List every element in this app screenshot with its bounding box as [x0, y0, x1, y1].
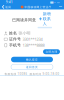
- staticText: 138****8888: [22, 43, 44, 48]
- staticText: 手机号: [9, 43, 21, 48]
- staticText: 立即办理: [45, 50, 57, 53]
- staticText: 返回: [5, 5, 11, 9]
- staticText: ▮▮▮ ⌁ ▭: [50, 1, 60, 4]
- staticText: 返回首页: [26, 65, 38, 69]
- staticText: 张小明: [18, 31, 30, 36]
- staticText: 确认提交: [26, 58, 38, 61]
- staticText: 证件号: [9, 37, 21, 42]
- button[interactable]: 确认提交: [11, 57, 53, 62]
- staticText: 3301**1234: [22, 37, 42, 42]
- staticText: 姓名: [9, 31, 17, 36]
- staticText: 中国移动网上营业厅: [24, 5, 51, 9]
- button[interactable]: 新增联系人: [38, 11, 52, 28]
- staticText: 已阅读并同意: [12, 17, 36, 22]
- button[interactable]: 返回: [0, 4, 13, 9]
- staticText: 9:41: [6, 0, 13, 4]
- staticText: •••: [59, 5, 62, 9]
- button[interactable]: 返回首页: [11, 64, 53, 70]
- button[interactable]: 立即办理: [43, 49, 60, 54]
- staticText: 新增联系人: [43, 11, 51, 26]
- staticText: 客服热线 10086 服务时间 9:00-18:00: [4, 72, 59, 76]
